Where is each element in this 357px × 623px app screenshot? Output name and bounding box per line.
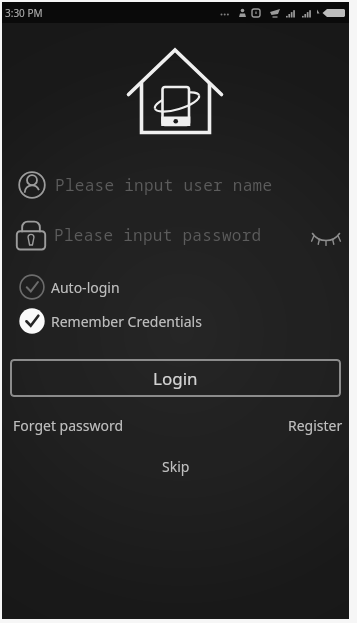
staticText: Please input user name (55, 174, 273, 196)
button[interactable]: Auto-login (19, 274, 349, 300)
staticText: Register (288, 416, 343, 435)
staticText: Auto-login (51, 278, 120, 297)
staticText: Remember Credentials (51, 312, 202, 331)
staticText: Login (153, 367, 198, 390)
button[interactable]: Login (10, 359, 341, 397)
staticText: 3:30 PM (5, 6, 43, 20)
button[interactable]: Remember Credentials (19, 308, 349, 334)
staticText: Forget password (13, 416, 124, 435)
button[interactable]: Show password (309, 218, 343, 251)
staticText: Skip (162, 457, 190, 476)
button[interactable]: Please input password (2, 218, 349, 251)
button[interactable]: Forget password (13, 414, 124, 437)
button[interactable]: Skip (148, 454, 204, 479)
staticText: Please input password (54, 224, 262, 246)
button[interactable]: Register (288, 414, 343, 437)
button[interactable]: Please input user name (2, 171, 349, 204)
